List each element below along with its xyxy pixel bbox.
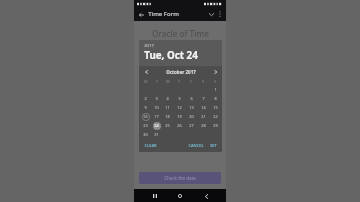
button[interactable]: 14 bbox=[197, 103, 209, 112]
staticText: 6 bbox=[190, 96, 193, 101]
button[interactable]: Expand bbox=[207, 10, 216, 19]
staticText: 21 bbox=[201, 114, 206, 119]
staticText: 14 bbox=[201, 105, 206, 110]
button[interactable]: 21 bbox=[197, 112, 209, 121]
staticText: Oracle of Time bbox=[152, 28, 209, 39]
staticText: 10 bbox=[154, 105, 159, 110]
staticText: 25 bbox=[165, 123, 170, 128]
staticText: 12 bbox=[177, 105, 182, 110]
button[interactable]: 2 bbox=[140, 94, 151, 103]
staticText: 15 bbox=[213, 105, 218, 110]
staticText: 29 bbox=[213, 123, 218, 128]
staticText: 2 bbox=[144, 96, 147, 101]
staticText: 26 bbox=[177, 123, 182, 128]
staticText: 30 bbox=[143, 132, 148, 137]
staticText: 7 bbox=[202, 96, 205, 101]
staticText: 1 bbox=[214, 87, 217, 92]
staticText: 20 bbox=[189, 114, 194, 119]
staticText: M bbox=[144, 79, 148, 84]
button[interactable]: 31 bbox=[151, 130, 162, 139]
staticText: S bbox=[202, 79, 204, 84]
button[interactable]: CANCEL bbox=[186, 141, 206, 150]
staticText: 8 bbox=[214, 96, 217, 101]
button[interactable]: 9 bbox=[140, 103, 151, 112]
button[interactable]: 19 bbox=[173, 112, 185, 121]
staticText: 17 bbox=[154, 114, 159, 119]
staticText: 23 bbox=[143, 123, 148, 128]
button[interactable]: 30 bbox=[140, 130, 151, 139]
staticText: Time Form bbox=[148, 10, 179, 18]
button[interactable]: Next month bbox=[211, 68, 219, 76]
staticText: 27 bbox=[189, 123, 194, 128]
button[interactable]: SET bbox=[208, 141, 219, 150]
staticText: 22 bbox=[213, 114, 218, 119]
staticText: S bbox=[214, 79, 216, 84]
button[interactable]: Check the date bbox=[139, 172, 221, 184]
button[interactable]: 6 bbox=[185, 94, 197, 103]
button[interactable]: CLEAR bbox=[142, 141, 159, 150]
staticText: T bbox=[178, 79, 180, 84]
button[interactable]: 8 bbox=[209, 94, 221, 103]
staticText: W bbox=[166, 79, 170, 84]
staticText: SET bbox=[210, 143, 217, 148]
staticText: 3 bbox=[155, 96, 158, 101]
button[interactable]: Home bbox=[175, 191, 185, 201]
staticText: CANCEL bbox=[188, 143, 204, 148]
staticText: 19 bbox=[177, 114, 182, 119]
button[interactable]: 22 bbox=[209, 112, 221, 121]
staticText: 31 bbox=[154, 132, 159, 137]
button[interactable]: 10 bbox=[151, 103, 162, 112]
button[interactable]: 12 bbox=[173, 103, 185, 112]
button[interactable]: 18 bbox=[162, 112, 173, 121]
button[interactable]: Recent apps bbox=[150, 191, 160, 201]
button[interactable]: 27 bbox=[185, 121, 197, 130]
button[interactable]: 25 bbox=[162, 121, 173, 130]
button[interactable]: 26 bbox=[173, 121, 185, 130]
button[interactable]: 4 bbox=[162, 94, 173, 103]
staticText: 28 bbox=[201, 123, 206, 128]
button[interactable]: Previous month bbox=[142, 68, 150, 76]
button[interactable]: 28 bbox=[197, 121, 209, 130]
button[interactable]: 23 bbox=[140, 121, 151, 130]
staticText: 5 bbox=[178, 96, 181, 101]
staticText: 16 bbox=[143, 114, 148, 119]
button[interactable]: 17 bbox=[151, 112, 162, 121]
button[interactable]: More options bbox=[216, 10, 224, 18]
staticText: 4 bbox=[166, 96, 169, 101]
button[interactable]: 15 bbox=[209, 103, 221, 112]
staticText: 18 bbox=[165, 114, 170, 119]
staticText: 9 bbox=[144, 105, 147, 110]
button[interactable]: 24 bbox=[151, 121, 162, 130]
button[interactable]: Back bbox=[201, 191, 211, 201]
staticText: Answer questions, guess the future only bbox=[148, 42, 212, 47]
staticText: Tue, Oct 24 bbox=[144, 49, 198, 62]
button[interactable]: 5 bbox=[173, 94, 185, 103]
button[interactable]: 11 bbox=[162, 103, 173, 112]
staticText: F bbox=[190, 79, 192, 84]
button[interactable]: 20 bbox=[185, 112, 197, 121]
button[interactable]: 29 bbox=[209, 121, 221, 130]
button[interactable]: 7 bbox=[197, 94, 209, 103]
staticText: October 2017 bbox=[166, 69, 196, 75]
staticText: 24 bbox=[154, 123, 159, 128]
staticText: Check the date bbox=[164, 175, 196, 181]
staticText: 2017 bbox=[144, 43, 154, 49]
staticText: 13 bbox=[189, 105, 194, 110]
button[interactable]: 13 bbox=[185, 103, 197, 112]
staticText: CLEAR bbox=[144, 143, 157, 148]
staticText: 11 bbox=[165, 105, 170, 110]
staticText: T bbox=[156, 79, 158, 84]
button[interactable]: 1 bbox=[209, 85, 221, 94]
button[interactable]: 16 bbox=[140, 112, 151, 121]
button[interactable]: 3 bbox=[151, 94, 162, 103]
button[interactable]: Navigate up bbox=[137, 10, 146, 19]
